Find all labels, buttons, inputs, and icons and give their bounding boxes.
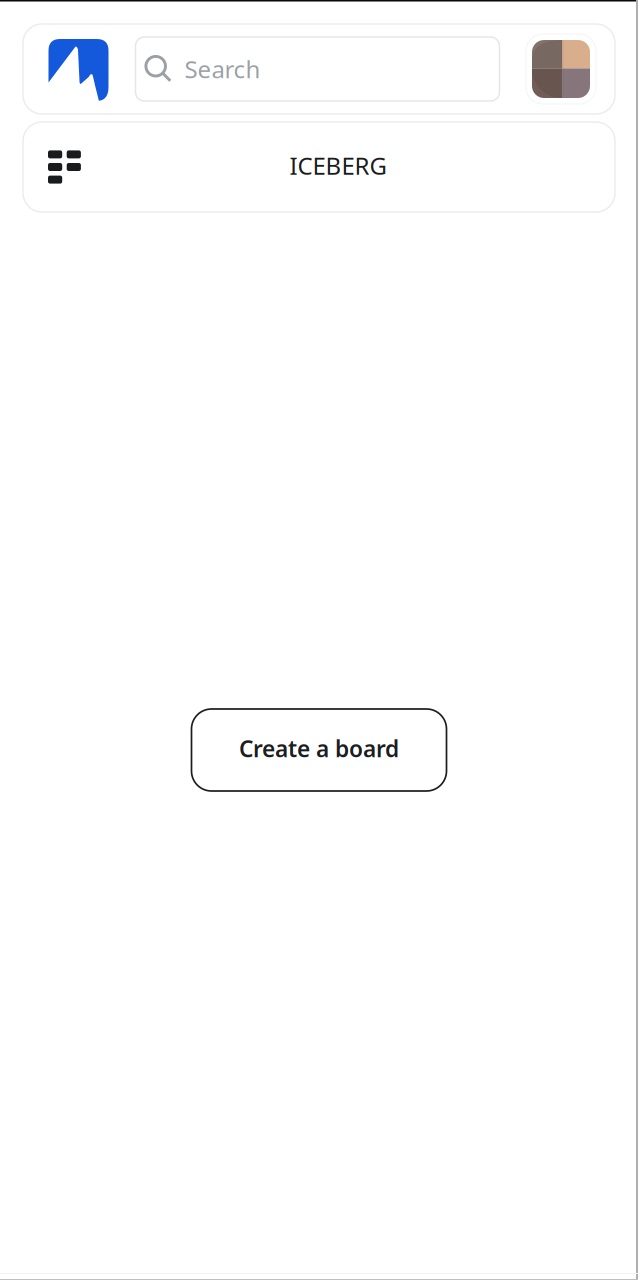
button[interactable]: Create a board [191, 709, 446, 791]
button[interactable]: ICEBERG [23, 122, 615, 212]
button[interactable]: Iceberg home [48, 24, 108, 114]
staticText: Create a board [239, 733, 399, 763]
button[interactable]: Your profile [526, 24, 596, 114]
button[interactable]: Search [135, 37, 499, 101]
staticText: Search [184, 53, 260, 85]
staticText: ICEBERG [289, 150, 386, 181]
